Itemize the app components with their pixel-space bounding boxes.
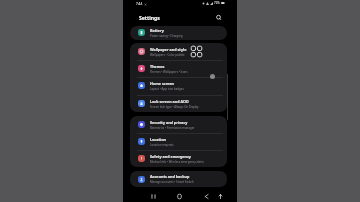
staticText: Layout • App icon badges — [150, 87, 184, 91]
button[interactable]: Recents — [149, 192, 158, 201]
staticText: Themes — [150, 64, 165, 69]
staticText: Location — [150, 137, 166, 142]
staticText: Battery — [150, 28, 164, 33]
button[interactable]: Lock screen and AOD — [130, 95, 227, 112]
staticText: Home screen — [150, 81, 175, 86]
button[interactable]: Safety and emergency — [130, 150, 227, 167]
staticText: Lock screen and AOD — [150, 99, 189, 104]
staticText: Themes • Wallpapers • Icons — [150, 70, 188, 74]
staticText: 72% — [214, 1, 220, 5]
staticText: Screen lock type • Always On Display — [150, 105, 199, 109]
button[interactable]: Wallpaper and style — [130, 43, 227, 60]
staticText: Wallpaper and style — [150, 47, 187, 52]
staticText: Safety and emergency — [150, 154, 191, 159]
button[interactable]: Battery — [130, 26, 227, 40]
staticText: Settings — [139, 15, 160, 22]
button[interactable]: Search — [214, 13, 224, 23]
staticText: Medical info • Wireless emergency alerts — [150, 160, 204, 164]
staticText: Location requests — [150, 143, 174, 147]
staticText: Accounts and backup — [150, 174, 190, 179]
staticText: 7:44 — [136, 2, 143, 6]
staticText: Security and privacy — [150, 120, 188, 125]
staticText: Wallpapers • Color palette — [150, 53, 185, 57]
staticText: Power saving • Charging — [150, 34, 183, 38]
staticText: Biometrics • Permission manager — [150, 126, 195, 130]
button[interactable]: Location — [130, 133, 227, 150]
button[interactable]: Back — [202, 192, 211, 201]
button[interactable]: Accounts and backup — [130, 171, 227, 187]
button[interactable]: Pin screen — [216, 192, 225, 201]
button[interactable]: Home screen — [130, 77, 227, 94]
staticText: Manage accounts • Smart Switch — [150, 180, 194, 184]
button[interactable]: Home — [175, 192, 184, 201]
button[interactable]: Security and privacy — [130, 116, 227, 133]
button[interactable]: Themes — [130, 60, 227, 77]
